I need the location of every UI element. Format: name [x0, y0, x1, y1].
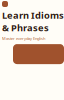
staticText: Learn Idioms & Phrases	[2, 9, 64, 34]
staticText: Master everyday English	[2, 36, 45, 41]
